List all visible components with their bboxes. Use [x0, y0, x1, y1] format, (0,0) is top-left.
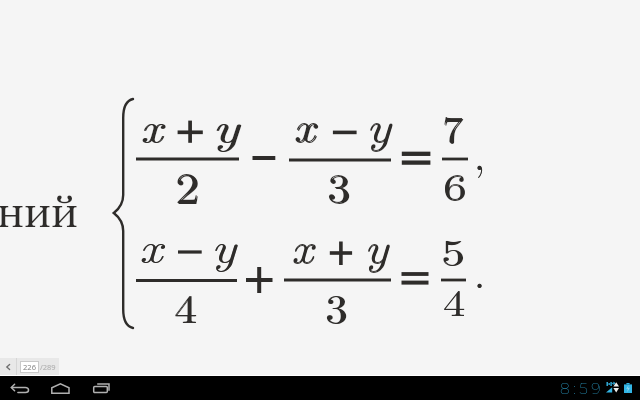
staticText: ,: [474, 125, 486, 182]
staticText: 4: [174, 277, 197, 334]
staticText: ний: [0, 193, 79, 238]
staticText: x: [140, 92, 162, 156]
staticText: 4: [175, 277, 198, 334]
staticText: x: [293, 92, 315, 155]
staticText: x: [291, 213, 313, 276]
staticText: 6: [443, 157, 468, 211]
button[interactable]: Back: [2, 376, 40, 400]
staticText: 7: [443, 101, 465, 156]
staticText: x: [291, 214, 313, 277]
staticText: y: [366, 92, 391, 155]
staticText: 226: [23, 362, 36, 372]
staticText: 7: [442, 100, 464, 155]
staticText: 6: [443, 158, 468, 212]
staticText: ,: [474, 125, 486, 182]
staticText: 4: [443, 275, 466, 327]
staticText: 2: [176, 156, 201, 217]
staticText: y: [364, 214, 389, 277]
button[interactable]: Home: [41, 376, 79, 400]
staticText: .: [474, 243, 486, 300]
staticText: 5: [441, 224, 465, 277]
staticText: 3: [326, 277, 348, 336]
staticText: 3: [327, 156, 350, 215]
staticText: y: [213, 92, 240, 156]
button[interactable]: Recent apps: [83, 376, 121, 400]
staticText: y: [364, 213, 389, 276]
staticText: 4: [443, 275, 466, 327]
button[interactable]: 226: [20, 361, 39, 373]
staticText: 5: [442, 224, 466, 277]
staticText: y: [211, 212, 236, 276]
staticText: /289: [40, 362, 56, 372]
staticText: y: [366, 93, 391, 156]
staticText: 2: [175, 155, 200, 216]
staticText: .: [474, 243, 486, 300]
staticText: x: [141, 92, 163, 156]
staticText: y: [212, 92, 239, 156]
staticText: x: [294, 93, 316, 156]
staticText: y: [211, 212, 236, 276]
staticText: 3: [325, 277, 347, 336]
staticText: x: [139, 212, 162, 276]
staticText: x: [139, 212, 162, 276]
staticText: 8:59: [560, 379, 604, 398]
staticText: 3: [328, 157, 351, 216]
button[interactable]: Previous page: [0, 358, 16, 375]
